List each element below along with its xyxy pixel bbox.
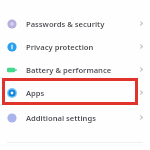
other: Battery and performance	[7, 65, 17, 75]
staticText: Apps	[26, 88, 138, 98]
button[interactable]: Additional settings	[0, 106, 150, 129]
staticText: Additional settings	[26, 113, 138, 123]
button[interactable]: Battery and performance	[0, 58, 150, 81]
staticText: Privacy protection	[26, 42, 138, 52]
button[interactable]: Apps	[0, 81, 150, 104]
staticText: Passwords & security	[26, 19, 138, 29]
button[interactable]: Passwords and security	[0, 12, 150, 35]
other: Additional settings	[7, 113, 17, 123]
other: Apps	[7, 88, 17, 98]
button[interactable]: Privacy protection	[0, 35, 150, 58]
other: Passwords and security	[7, 19, 17, 29]
staticText: Battery & performance	[26, 65, 138, 75]
other: Privacy protection	[7, 42, 17, 52]
